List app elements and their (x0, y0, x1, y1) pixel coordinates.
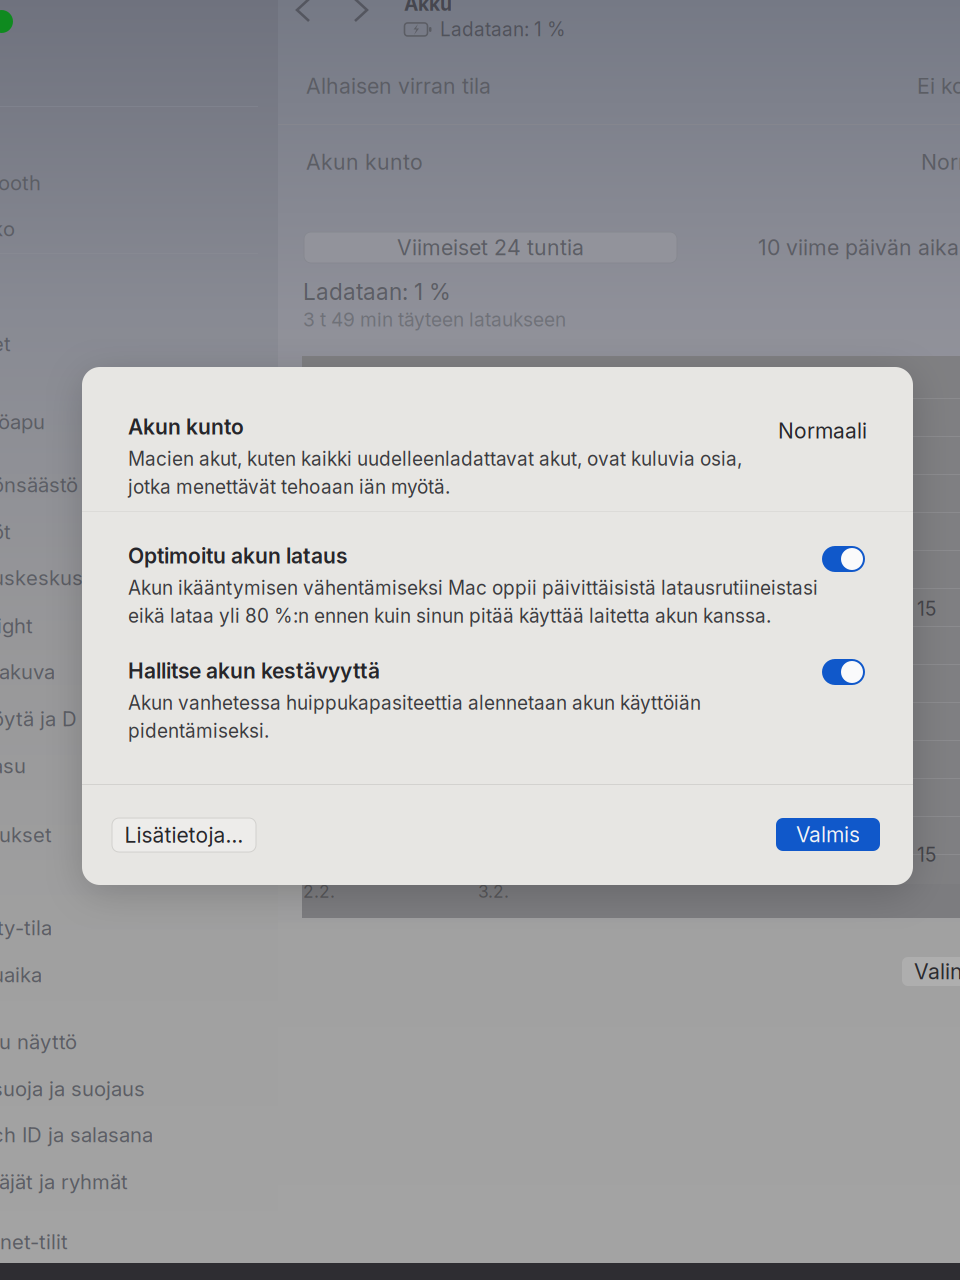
button[interactable]: tooth (0, 164, 240, 202)
staticText: jotka menettävät tehoaan iän myötä. (128, 475, 450, 498)
button[interactable]: Valmis (776, 818, 880, 851)
staticText: 15 (917, 597, 936, 620)
button[interactable]: Alhaisen virran tila (278, 59, 960, 109)
staticText: Akku (404, 0, 452, 15)
staticText: Akun ikääntymisen vähentämiseksi Mac opp… (128, 576, 818, 599)
staticText: Lisätietoja… (124, 822, 243, 848)
staticText: tooth (0, 171, 41, 195)
button[interactable]: Viimeiset 24 tuntia (304, 232, 677, 263)
staticText: Akun vanhetessa huippukapasiteettia alen… (128, 691, 701, 714)
staticText: öt (0, 520, 11, 544)
button[interactable]: ity-tila (0, 909, 240, 947)
button[interactable]: tu näyttö (0, 1023, 240, 1061)
button[interactable]: Valinnat… (902, 957, 960, 986)
staticText: töapu (0, 410, 45, 434)
staticText: Optimoitu akun lataus (128, 543, 347, 568)
staticText: 2.2. (303, 881, 335, 902)
button[interactable]: takuva (0, 653, 240, 691)
staticText: Viimeiset 24 tuntia (397, 235, 584, 260)
staticText: tukset (0, 823, 52, 847)
button[interactable]: ch ID ja salasana (0, 1116, 240, 1154)
staticText: Ladataan: 1 % (440, 18, 566, 41)
staticText: önsäästö (0, 473, 78, 497)
staticText: asu (0, 754, 26, 778)
staticText: 10 viime päivän aikana (758, 235, 960, 260)
button[interactable]: önsäästö (0, 466, 240, 504)
staticText: tu näyttö (0, 1030, 77, 1054)
staticText: uaika (0, 963, 42, 987)
staticText: ch ID ja salasana (0, 1123, 153, 1147)
button[interactable]: täjät ja ryhmät (0, 1163, 240, 1201)
staticText: Akun kunto (128, 414, 244, 439)
staticText: takuva (0, 660, 55, 684)
staticText: Macien akut, kuten kaikki uudelleenladat… (128, 447, 742, 470)
button[interactable]: Akun kunto (278, 135, 960, 185)
button[interactable]: Forward (341, 0, 381, 30)
staticText: Ladataan: 1 % (303, 278, 451, 305)
button[interactable]: uskeskus (0, 559, 240, 597)
button[interactable]: suoja ja suojaus (0, 1070, 240, 1108)
staticText: uskeskus (0, 566, 83, 590)
button[interactable]: t (0, 862, 240, 900)
staticText: Normaali (778, 418, 867, 443)
button[interactable]: Optimoitu akun lataus (822, 546, 865, 572)
staticText: 3.2. (478, 881, 509, 902)
staticText: Valinnat… (914, 959, 960, 984)
staticText: 3 t 49 min täyteen lataukseen (303, 308, 566, 331)
staticText: Ei kosk (917, 73, 960, 99)
staticText: light (0, 614, 33, 638)
staticText: täjät ja ryhmät (0, 1170, 128, 1194)
button[interactable]: uaika (0, 956, 240, 994)
button[interactable]: et (0, 325, 240, 363)
staticText: Hallitse akun kestävyyttä (128, 658, 380, 683)
staticText: suoja ja suojaus (0, 1077, 145, 1101)
button[interactable]: Back (283, 0, 323, 30)
staticText: öytä ja D (0, 707, 77, 731)
staticText: pidentämiseksi. (128, 719, 269, 742)
staticText: ko (0, 217, 15, 241)
staticText: 15 (917, 843, 936, 866)
button[interactable]: 10 viime päivän aikana (758, 232, 960, 263)
button[interactable]: öt (0, 513, 240, 551)
staticText: Akun kunto (306, 149, 423, 175)
staticText: Valmis (796, 822, 860, 847)
staticText: ity-tila (0, 916, 52, 940)
button[interactable]: Hallitse akun kestävyyttä (822, 659, 865, 685)
button[interactable]: öytä ja D (0, 700, 240, 738)
button[interactable]: asu (0, 747, 240, 785)
button[interactable]: tukset (0, 816, 240, 854)
staticText: Alhaisen virran tila (306, 73, 491, 99)
button[interactable]: Lisätietoja… (112, 818, 256, 852)
button[interactable]: rnet-tilit (0, 1223, 240, 1261)
button[interactable]: töapu (0, 403, 240, 441)
staticText: et (0, 332, 11, 356)
button[interactable]: light (0, 607, 240, 645)
staticText: eikä lataa yli 80 %:n ennen kuin sinun p… (128, 604, 771, 627)
staticText: Norma (921, 149, 960, 175)
staticText: rnet-tilit (0, 1230, 68, 1254)
